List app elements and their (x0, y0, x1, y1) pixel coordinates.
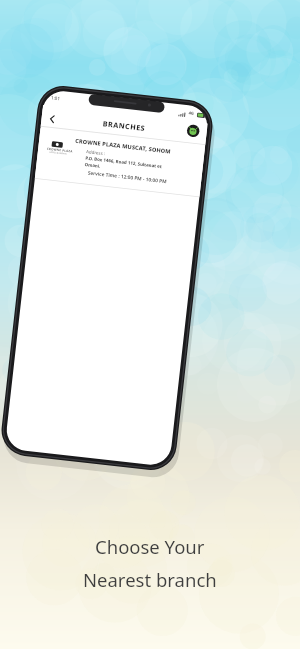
button[interactable] (50, 132, 192, 190)
button[interactable]: Back (22, 117, 40, 133)
button[interactable]: Profile (153, 107, 171, 125)
